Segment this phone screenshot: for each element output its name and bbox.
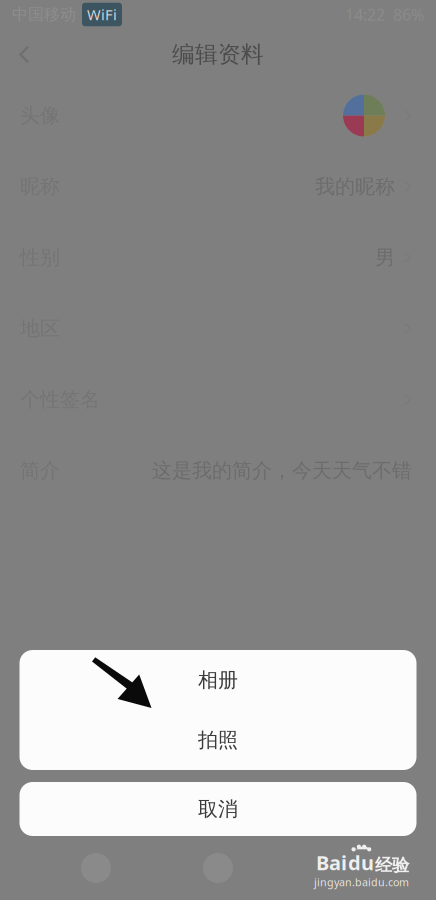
button[interactable]: Discover [196,846,240,890]
staticText: 拍照 [198,728,238,752]
staticText: du [348,849,374,876]
staticText: 昵称 [20,174,60,199]
staticText: 经验 [375,854,409,876]
button[interactable]: 相册 [19,650,416,710]
staticText: 我的昵称 [315,174,395,199]
staticText: WiFi [87,5,117,24]
button[interactable]: Back [12,39,42,69]
staticText: jingyan.baidu.com [314,875,409,889]
staticText: 取消 [198,797,238,821]
staticText: 个性签名 [20,387,100,412]
staticText: 男 [375,245,395,270]
button[interactable]: 简介 [0,435,436,506]
button[interactable]: 头像 [0,80,436,151]
staticText: 编辑资料 [172,41,264,68]
staticText: 简介 [20,458,60,483]
staticText: 14:22 86% [345,4,424,25]
button[interactable]: 拍照 [19,710,416,770]
staticText: 性别 [20,245,60,270]
button[interactable]: Home [74,846,118,890]
staticText: 这是我的简介，今天天气不错 [152,458,412,483]
staticText: 头像 [20,103,60,128]
staticText: 地区 [20,316,60,341]
button[interactable]: 取消 [19,782,416,836]
staticText: 中国移动 [12,5,76,24]
staticText: Bai [316,849,347,876]
staticText: 相册 [198,668,238,692]
